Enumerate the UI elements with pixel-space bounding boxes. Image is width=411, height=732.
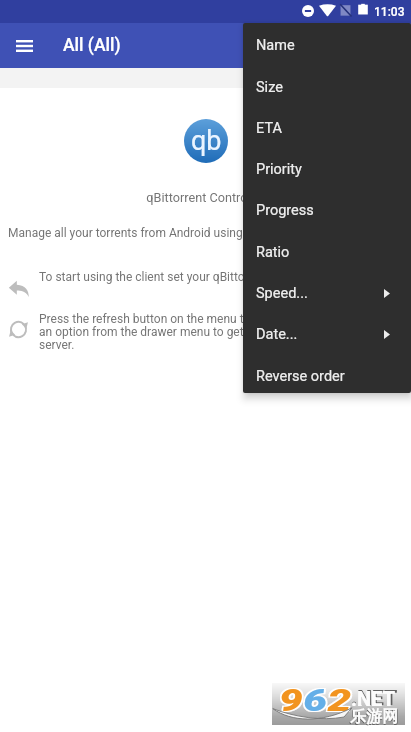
staticText: Size bbox=[256, 79, 283, 96]
staticText: 6 bbox=[305, 681, 329, 717]
staticText: 6 bbox=[303, 682, 328, 718]
staticText: Date... bbox=[256, 326, 298, 343]
staticText: 6 bbox=[305, 683, 329, 719]
staticText: 9 bbox=[277, 683, 302, 719]
button[interactable]: Ratio bbox=[243, 232, 411, 273]
staticText: Name bbox=[256, 37, 295, 54]
staticText: 乐游网 bbox=[349, 707, 399, 728]
staticText: 6 bbox=[302, 683, 326, 719]
staticText: Reverse order bbox=[256, 368, 345, 385]
staticText: 9 bbox=[277, 681, 302, 717]
staticText: Priority bbox=[256, 161, 302, 178]
staticText: 2 bbox=[329, 681, 353, 717]
staticText: .NET bbox=[351, 687, 396, 710]
staticText: 9 bbox=[281, 683, 305, 719]
staticText: Manage all your torrents from Android us… bbox=[8, 226, 292, 240]
staticText: All (All) bbox=[63, 35, 121, 56]
staticText: 2 bbox=[326, 683, 350, 719]
button[interactable]: Priority bbox=[243, 149, 411, 190]
button[interactable]: Size bbox=[243, 67, 411, 108]
staticText: Speed... bbox=[256, 285, 308, 302]
staticText: 11:03 bbox=[374, 5, 405, 19]
staticText: qBittorrent Controller bbox=[0, 190, 411, 205]
staticText: 乐游网 bbox=[350, 707, 398, 727]
button[interactable]: Date... bbox=[243, 314, 411, 355]
staticText: 9 bbox=[279, 682, 303, 718]
staticText: ETA bbox=[256, 120, 282, 137]
button[interactable]: Name bbox=[243, 25, 411, 66]
staticText: 2 bbox=[329, 683, 353, 719]
staticText: Progress bbox=[256, 202, 314, 219]
button[interactable]: Speed... bbox=[243, 273, 411, 314]
button[interactable]: ETA bbox=[243, 108, 411, 149]
staticText: Ratio bbox=[256, 244, 290, 261]
staticText: Press the refresh button on the menu to … bbox=[39, 312, 349, 352]
staticText: qb bbox=[191, 125, 222, 157]
button[interactable]: Open navigation drawer bbox=[8, 30, 40, 62]
staticText: .NET bbox=[351, 686, 398, 711]
button[interactable]: Reverse order bbox=[243, 356, 411, 393]
button[interactable]: Progress bbox=[243, 190, 411, 231]
staticText: 9 bbox=[281, 681, 305, 717]
staticText: 6 bbox=[302, 681, 326, 717]
staticText: To start using the client set your qBitt… bbox=[39, 270, 349, 284]
staticText: 2 bbox=[326, 681, 350, 717]
staticText: 2 bbox=[328, 682, 352, 718]
